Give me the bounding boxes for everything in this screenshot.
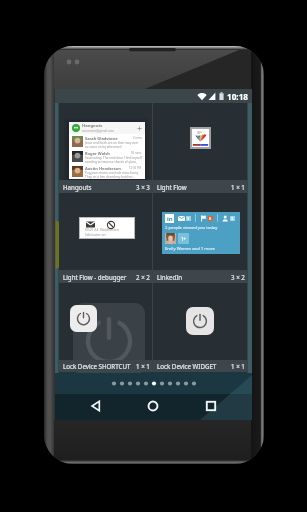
staticText: 00:21:34 Notification fabricator on (85, 227, 134, 237)
button[interactable]: Lock Device SHORTCUT (59, 283, 152, 372)
staticText: 58 mins (131, 151, 142, 155)
staticText: Pug jean shorts cornhole retro fanny pac… (85, 171, 142, 175)
staticText: Hangouts (82, 123, 103, 129)
staticText: 3 (231, 216, 234, 221)
staticText: 3 × 2 (231, 273, 245, 281)
button[interactable]: Lock Device WIDGET (153, 283, 247, 372)
staticText: 8 (209, 216, 212, 221)
staticText: Fascinating. The next time I find myself (85, 156, 142, 160)
staticText: 3 × 3 (136, 183, 150, 191)
button[interactable]: Back (82, 393, 110, 419)
staticText: They on a few chambray butcher.... (85, 175, 136, 179)
staticText: Light Flow - debugger (63, 273, 136, 281)
staticText: Lock Device SHORTCUT (63, 362, 136, 370)
staticText: Light Flow (157, 183, 231, 191)
staticText: Austin Henderson (85, 166, 121, 171)
button[interactable]: Light Flow (153, 103, 247, 193)
staticText: Hangouts (63, 183, 136, 191)
staticText: 10:18 (227, 91, 249, 102)
staticText: user.name@gmail.com (82, 129, 115, 133)
staticText: 1 × 1 (136, 362, 150, 370)
staticText: 1+ (181, 236, 187, 242)
button[interactable]: in (153, 193, 247, 283)
staticText: in (167, 215, 173, 223)
staticText: Emily Warren and 1 more (165, 246, 215, 252)
staticText: 2 people viewed you today (165, 225, 218, 231)
staticText: 12:36 PM (129, 166, 142, 170)
staticText: Jesse and Keith are on their way over no… (85, 141, 142, 145)
staticText: 1 × 1 (231, 183, 245, 191)
staticText: 3 (187, 216, 190, 221)
button[interactable]: Hangouts (59, 103, 152, 193)
button[interactable]: Recent apps (197, 393, 225, 419)
staticText: 2 mins (133, 136, 142, 140)
staticText: Roger Walsh (85, 151, 110, 156)
staticText: Lock Device WIDGET (157, 362, 231, 370)
staticText: so come on by whenever! (85, 145, 122, 149)
staticText: Sarah Gladstone (85, 136, 118, 141)
button[interactable]: Home (139, 393, 167, 419)
staticText: LinkedIn (157, 273, 231, 281)
button[interactable]: 00:21:34 Notification fabricator on (59, 193, 152, 283)
staticText: needing to traverse shards of glass, I'l… (85, 160, 142, 164)
staticText: 2 × 2 (136, 273, 150, 281)
staticText: 1 × 1 (231, 362, 245, 370)
